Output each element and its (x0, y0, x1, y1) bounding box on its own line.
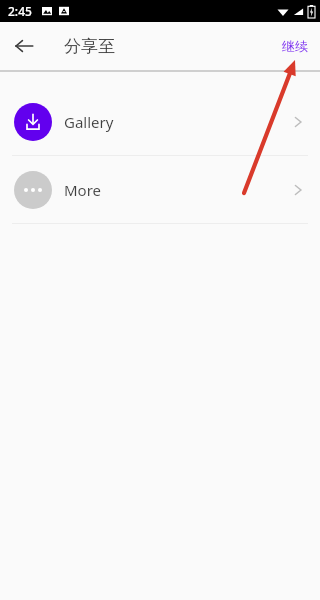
button[interactable]: Back (8, 30, 40, 62)
button[interactable]: More (0, 156, 320, 223)
staticText: 继续 (282, 38, 308, 54)
button[interactable]: Gallery (0, 88, 320, 155)
staticText: Gallery (64, 112, 114, 132)
staticText: 2:45 (8, 3, 32, 19)
button[interactable]: 继续 (270, 26, 320, 66)
staticText: More (64, 180, 102, 200)
staticText: 分享至 (64, 36, 115, 57)
